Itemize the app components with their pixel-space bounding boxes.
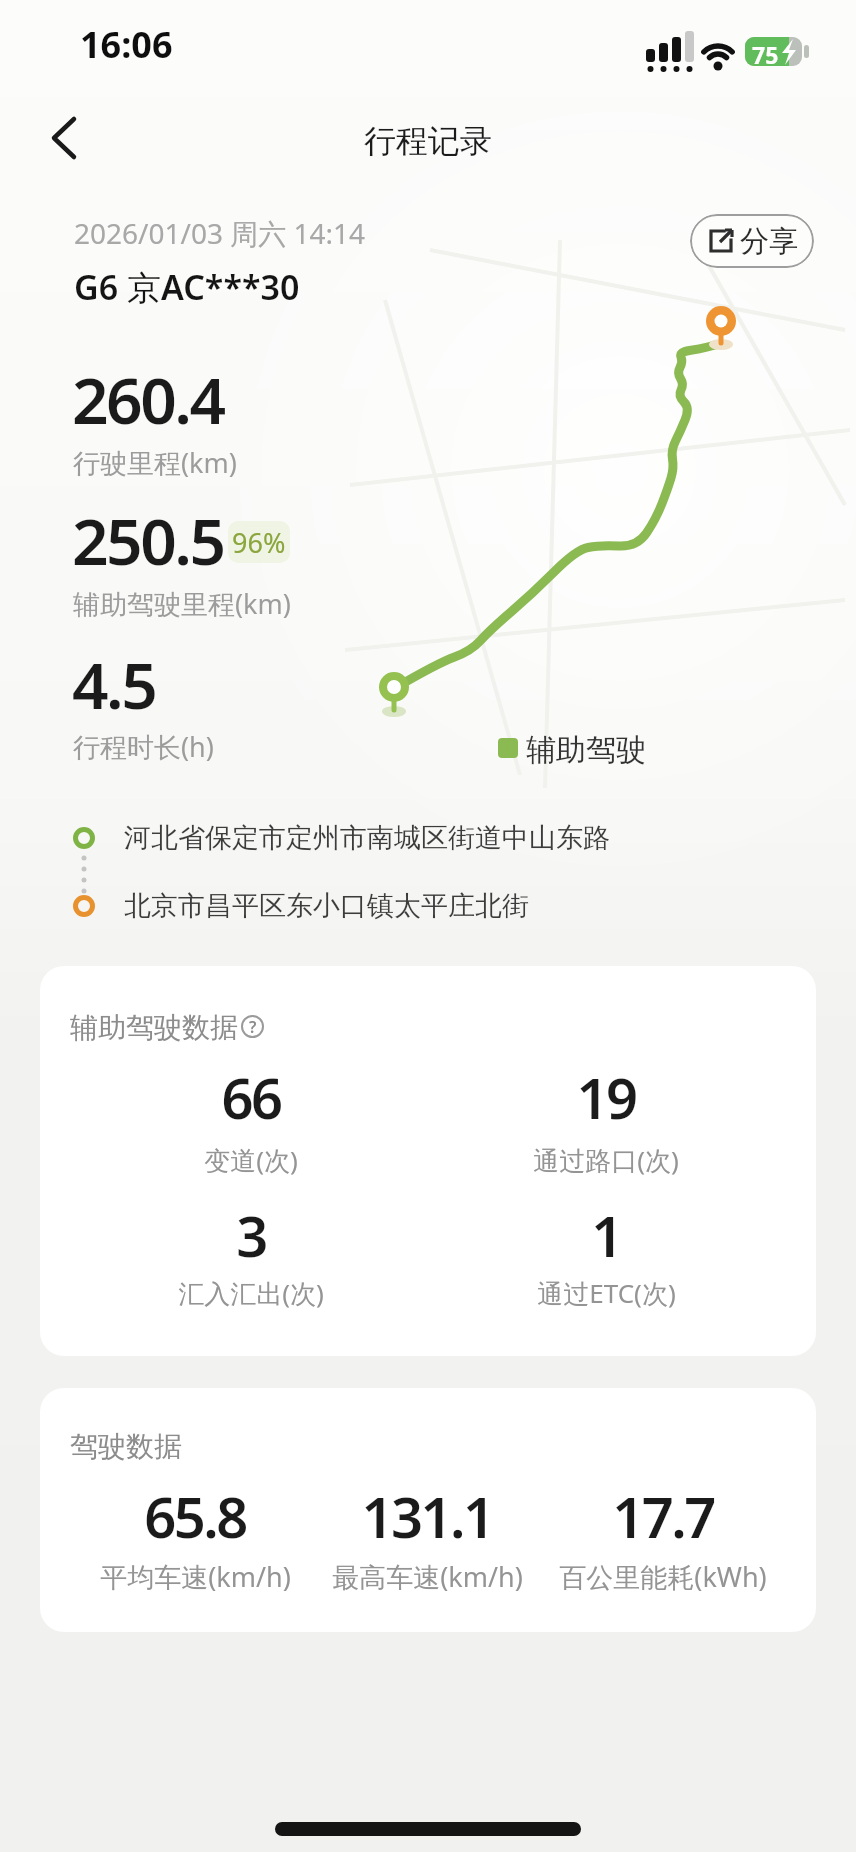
staticText: 75 xyxy=(752,39,779,70)
staticText: ? xyxy=(249,1016,257,1038)
staticText: 通过路口(次) xyxy=(533,1142,679,1178)
staticText: 北京市昌平区东小口镇太平庄北街 xyxy=(124,889,529,923)
staticText: 3 xyxy=(236,1197,266,1273)
staticText: 汇入汇出(次) xyxy=(178,1275,324,1311)
staticText: 行驶里程(km) xyxy=(73,444,237,481)
staticText: 2026/01/03 周六 14:14 xyxy=(74,214,366,252)
staticText: 66 xyxy=(221,1059,281,1135)
staticText: 分享 xyxy=(740,223,798,260)
staticText: 河北省保定市定州市南城区街道中山东路 xyxy=(124,821,610,855)
staticText: 250.5 xyxy=(72,497,224,584)
button[interactable]: 分享 xyxy=(690,214,814,268)
staticText: 131.1 xyxy=(361,1478,493,1554)
staticText: 19 xyxy=(576,1059,636,1135)
staticText: 65.8 xyxy=(144,1478,246,1554)
staticText: 百公里能耗(kWh) xyxy=(559,1558,767,1595)
staticText: 驾驶数据 xyxy=(70,1429,182,1464)
staticText: 16:06 xyxy=(80,20,173,69)
staticText: 辅助驾驶 xyxy=(526,731,646,769)
staticText: 260.4 xyxy=(72,356,224,443)
staticText: 行程记录 xyxy=(364,121,492,161)
staticText: G6 京AC***30 xyxy=(74,264,300,310)
staticText: 96% xyxy=(232,524,286,561)
staticText: 辅助驾驶里程(km) xyxy=(73,585,291,622)
button[interactable] xyxy=(40,112,92,164)
staticText: 1 xyxy=(591,1197,621,1273)
staticText: 17.7 xyxy=(612,1478,714,1554)
staticText: 最高车速(km/h) xyxy=(332,1558,523,1595)
staticText: 辅助驾驶数据 xyxy=(70,1010,238,1045)
staticText: 行程时长(h) xyxy=(73,728,214,765)
staticText: 4.5 xyxy=(72,641,156,728)
staticText: 通过ETC(次) xyxy=(537,1275,676,1311)
staticText: 平均车速(km/h) xyxy=(100,1558,291,1595)
staticText: 变道(次) xyxy=(204,1142,298,1178)
button[interactable]: ? xyxy=(241,1015,264,1038)
